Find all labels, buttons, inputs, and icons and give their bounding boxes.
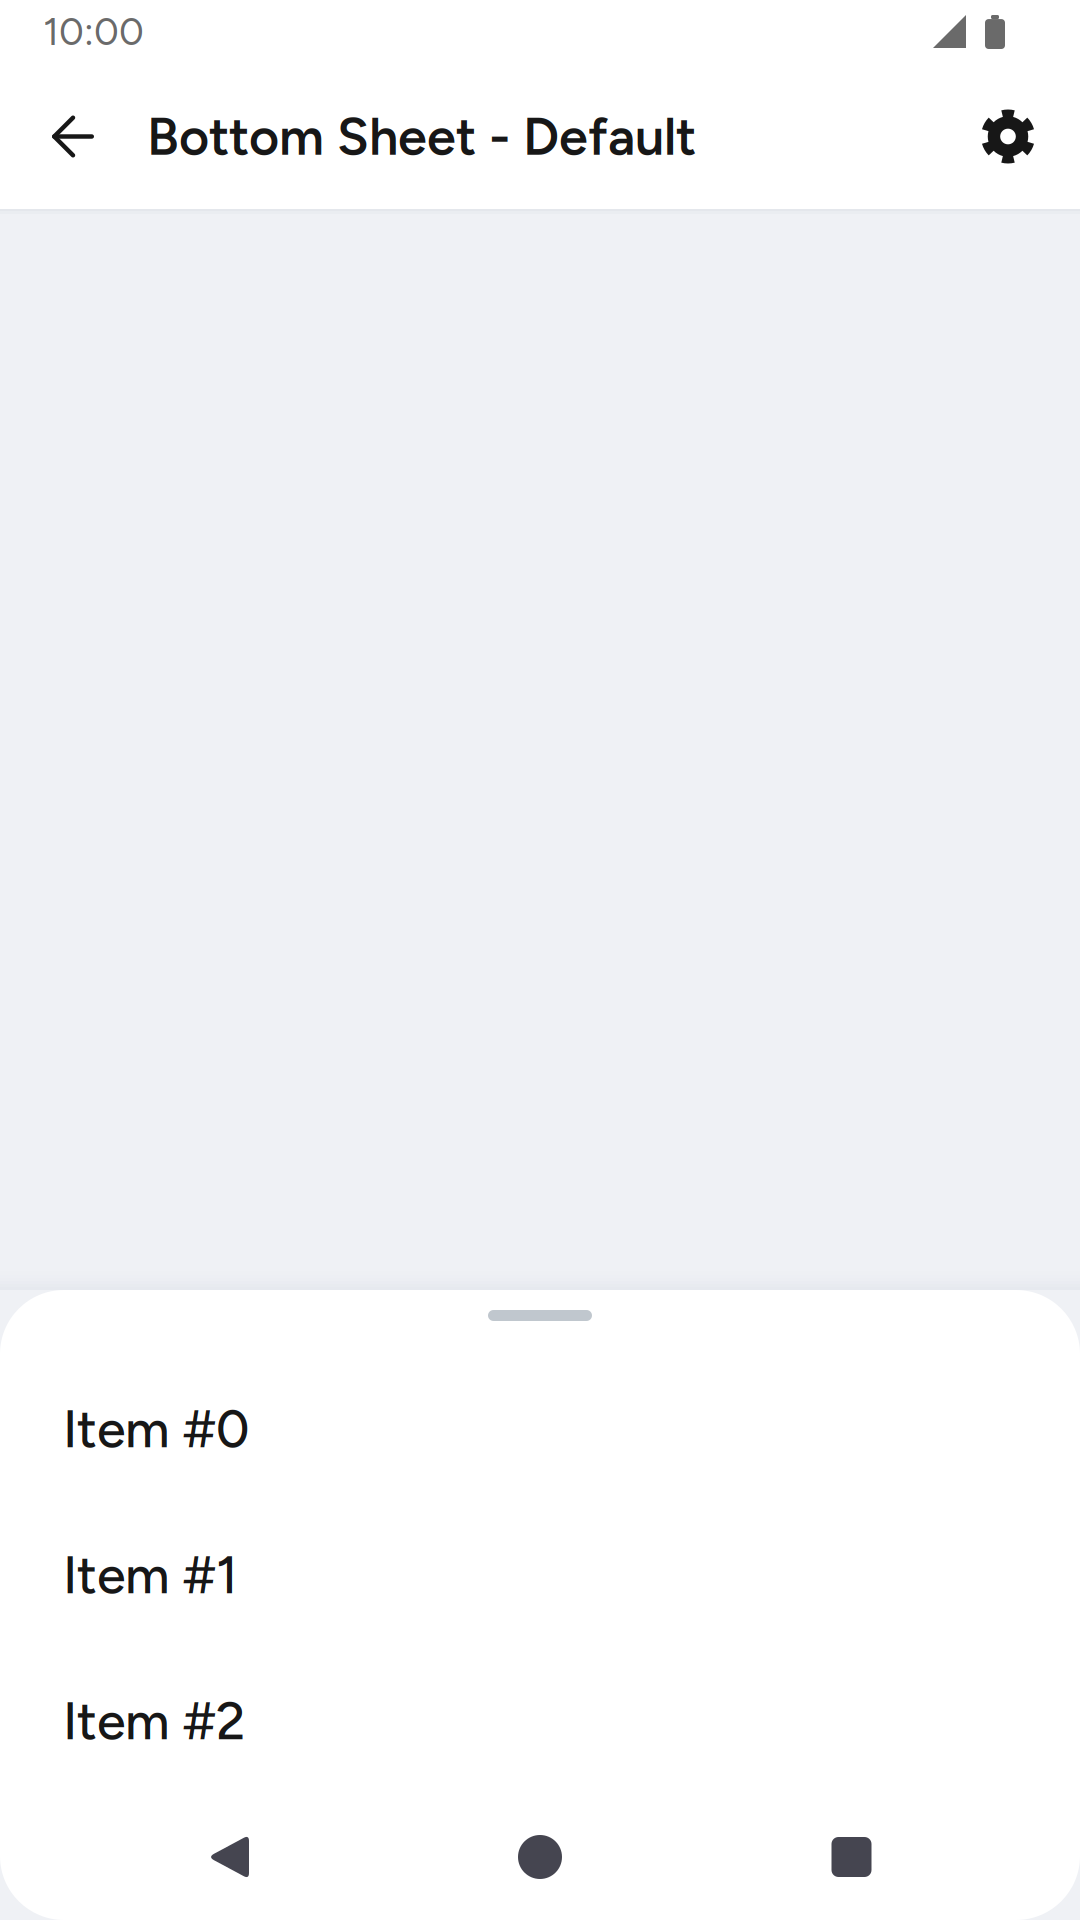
button[interactable]: Item #2 bbox=[0, 1648, 1080, 1794]
staticText: Bottom Sheet - Default bbox=[147, 105, 696, 168]
staticText: Item #0 bbox=[63, 1398, 249, 1460]
staticText: Item #1 bbox=[63, 1544, 238, 1606]
button[interactable]: Item #0 bbox=[0, 1356, 1080, 1502]
button[interactable]: Back bbox=[0, 1794, 457, 1920]
button[interactable]: Back bbox=[21, 84, 125, 188]
button[interactable]: Settings bbox=[956, 84, 1060, 188]
button[interactable]: Item #1 bbox=[0, 1502, 1080, 1648]
button[interactable]: Home bbox=[457, 1794, 623, 1920]
staticText: 10:00 bbox=[43, 8, 144, 55]
button[interactable]: Recent apps bbox=[623, 1794, 1080, 1920]
staticText: Item #2 bbox=[63, 1690, 245, 1752]
